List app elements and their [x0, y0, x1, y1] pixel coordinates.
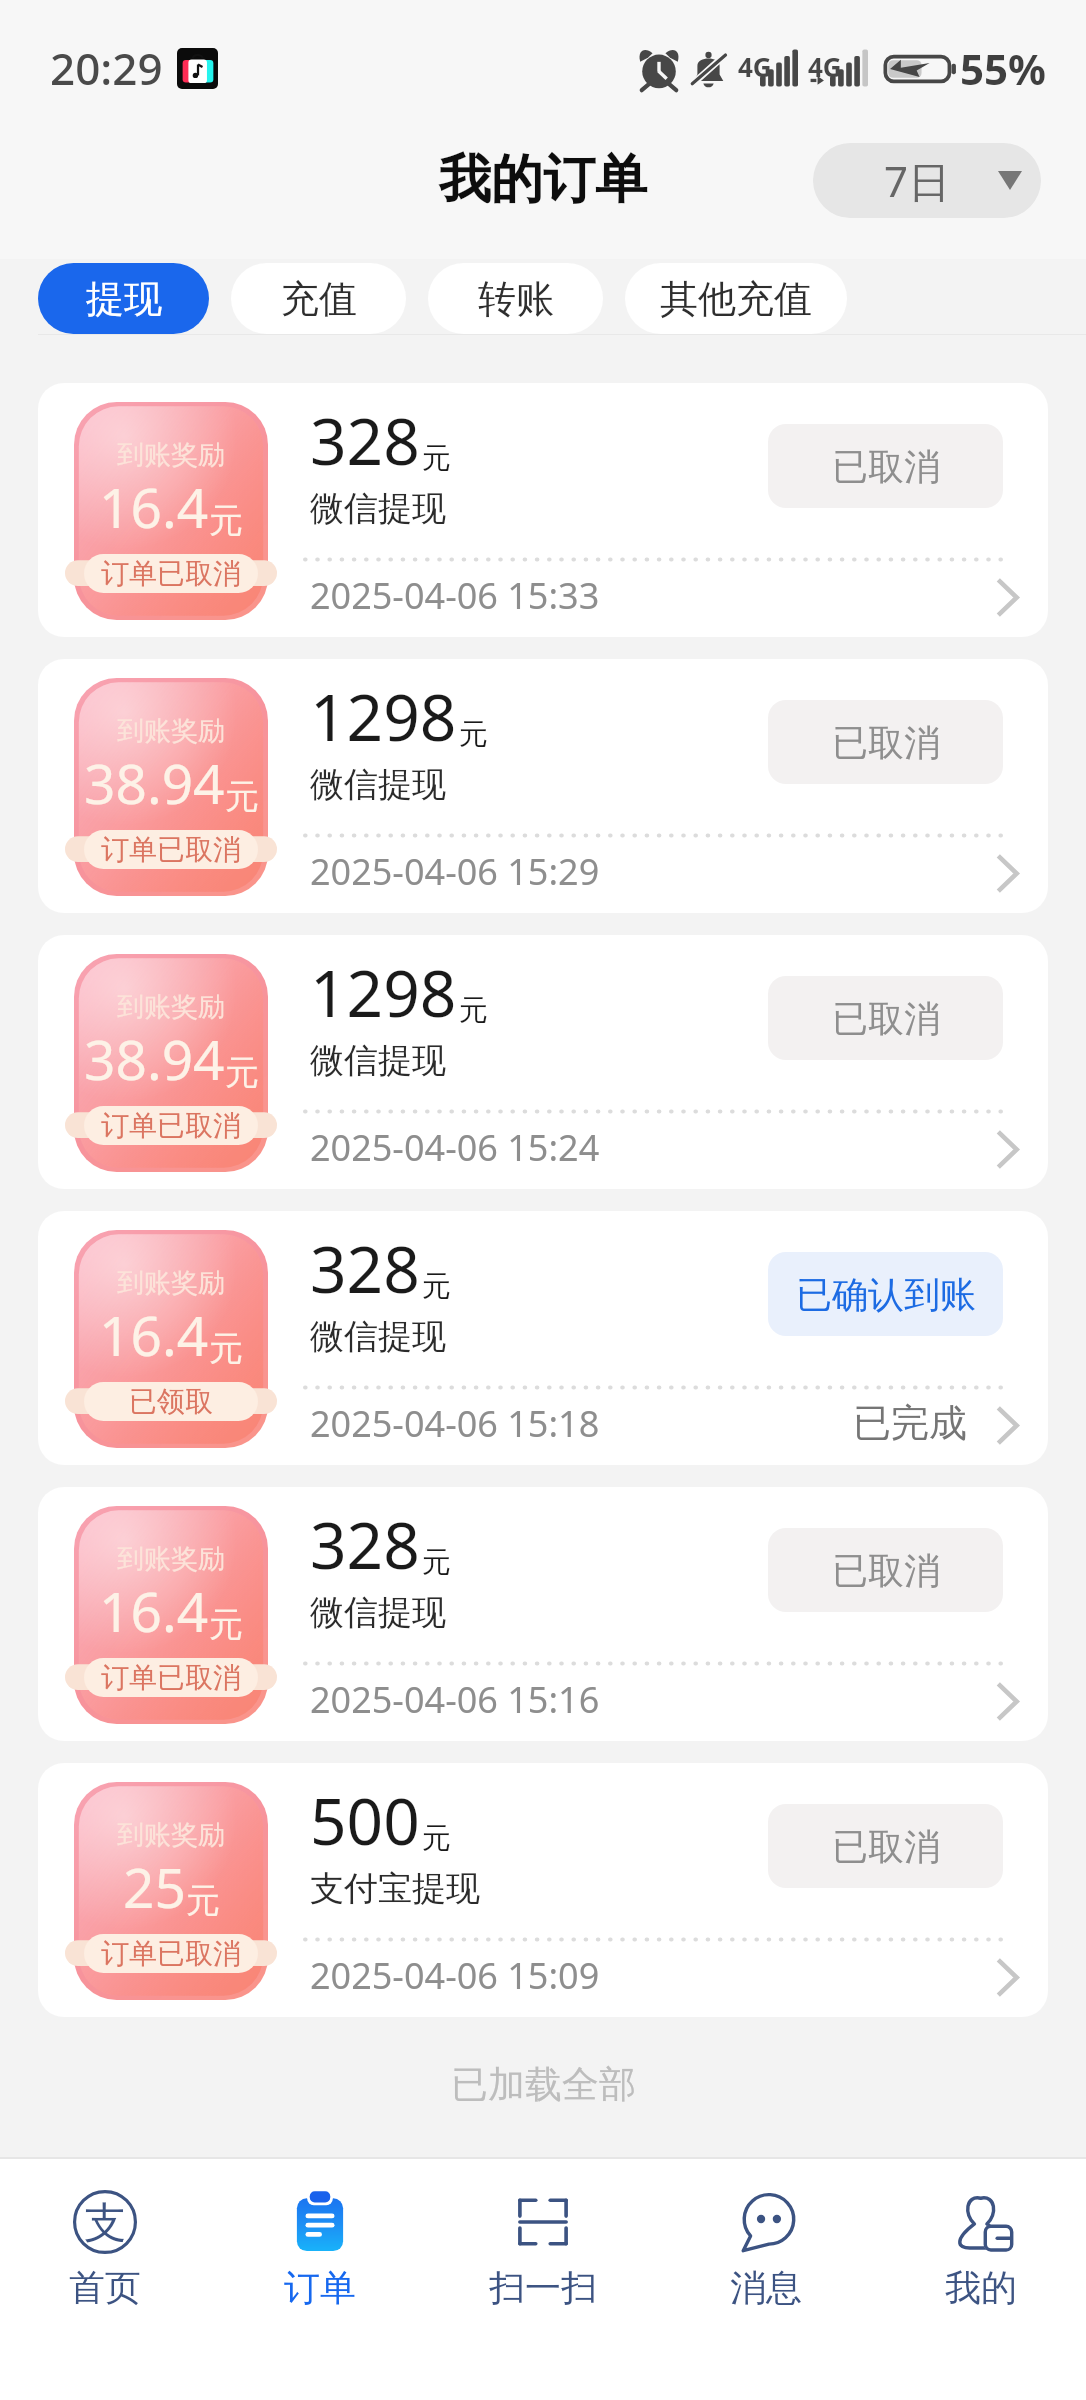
staticText: 微信提现: [310, 1315, 446, 1358]
staticText: 1298: [310, 673, 457, 760]
staticText: 已取消: [832, 996, 940, 1041]
staticText: 328: [310, 397, 420, 484]
button[interactable]: 其他充值: [625, 263, 847, 334]
staticText: 4G: [808, 49, 842, 84]
button[interactable]: 已取消: [768, 424, 1003, 508]
staticText: 微信提现: [310, 763, 446, 806]
staticText: 2025-04-06 15:16: [310, 1675, 600, 1724]
staticText: 消息: [730, 2265, 802, 2310]
staticText: 已取消: [832, 720, 940, 765]
staticText: 元: [422, 440, 451, 477]
other: 我的: [948, 2189, 1014, 2255]
staticText: 16.4: [99, 469, 209, 544]
staticText: 转账: [478, 275, 554, 323]
staticText: 到账奖励: [117, 1818, 225, 1852]
staticText: 元: [225, 775, 259, 818]
button[interactable]: 消息: [656, 2189, 875, 2314]
staticText: 元: [209, 1327, 243, 1370]
staticText: 4G: [738, 49, 772, 84]
other: 扫一扫: [510, 2189, 576, 2255]
staticText: 已完成: [853, 1399, 967, 1447]
button[interactable]: 充值: [231, 263, 406, 334]
staticText: 订单: [284, 2265, 356, 2310]
button[interactable]: 7日: [813, 143, 1041, 218]
staticText: 元: [209, 499, 243, 542]
staticText: 元: [422, 1268, 451, 1305]
staticText: 328: [310, 1225, 420, 1312]
staticText: 已取消: [832, 1824, 940, 1869]
button[interactable]: 订单: [210, 2189, 429, 2314]
staticText: 元: [459, 992, 488, 1029]
staticText: 2025-04-06 15:09: [310, 1951, 600, 2000]
staticText: 微信提现: [310, 1591, 446, 1634]
staticText: 扫一扫: [489, 2265, 597, 2310]
staticText: 其他充值: [660, 275, 812, 323]
staticText: 提现: [86, 275, 162, 323]
staticText: 元: [422, 1820, 451, 1857]
staticText: 元: [209, 1603, 243, 1646]
staticText: 到账奖励: [117, 438, 225, 472]
staticText: 已领取: [129, 1384, 213, 1419]
button[interactable]: 已取消: [768, 700, 1003, 784]
staticText: 16.4: [99, 1573, 209, 1648]
button[interactable]: 到账奖励: [38, 659, 1048, 913]
button[interactable]: 提现: [38, 263, 209, 334]
button[interactable]: 到账奖励: [38, 383, 1048, 637]
staticText: 38.94: [84, 745, 225, 820]
button[interactable]: 已取消: [768, 1528, 1003, 1612]
staticText: 328: [310, 1501, 420, 1588]
staticText: 我的订单: [439, 147, 647, 213]
staticText: 到账奖励: [117, 1542, 225, 1576]
staticText: 元: [186, 1879, 220, 1922]
staticText: 支付宝提现: [310, 1867, 480, 1910]
staticText: 25: [123, 1849, 186, 1924]
staticText: 已取消: [832, 1548, 940, 1593]
staticText: 2025-04-06 15:29: [310, 847, 600, 896]
button[interactable]: 扫一扫: [429, 2189, 656, 2314]
staticText: 元: [422, 1544, 451, 1581]
staticText: 订单已取消: [101, 1936, 241, 1971]
staticText: 微信提现: [310, 487, 446, 530]
staticText: 到账奖励: [117, 714, 225, 748]
button[interactable]: 首页: [0, 2189, 210, 2314]
button[interactable]: 我的: [875, 2189, 1086, 2314]
staticText: 元: [459, 716, 488, 753]
button[interactable]: 已确认到账: [768, 1252, 1003, 1336]
staticText: 16.4: [99, 1297, 209, 1372]
staticText: 订单已取消: [101, 1660, 241, 1695]
button[interactable]: 转账: [428, 263, 603, 334]
staticText: 订单已取消: [101, 1108, 241, 1143]
staticText: 我的: [945, 2265, 1017, 2310]
staticText: 支: [84, 2197, 126, 2250]
staticText: 38.94: [84, 1021, 225, 1096]
staticText: 2025-04-06 15:33: [310, 571, 600, 620]
staticText: 500: [310, 1777, 420, 1864]
button[interactable]: 到账奖励: [38, 935, 1048, 1189]
staticText: 到账奖励: [117, 990, 225, 1024]
staticText: 55%: [960, 40, 1046, 97]
button[interactable]: 到账奖励: [38, 1487, 1048, 1741]
button[interactable]: 到账奖励: [38, 1763, 1048, 2017]
staticText: 已加载全部: [451, 2061, 636, 2108]
staticText: 订单已取消: [101, 556, 241, 591]
staticText: 20:29: [50, 38, 163, 98]
staticText: 首页: [69, 2265, 141, 2310]
staticText: 订单已取消: [101, 832, 241, 867]
staticText: 元: [225, 1051, 259, 1094]
other: 消息: [733, 2189, 799, 2255]
other: 订单: [287, 2189, 353, 2255]
button[interactable]: 已取消: [768, 976, 1003, 1060]
staticText: 充值: [281, 275, 357, 323]
button[interactable]: 到账奖励: [38, 1211, 1048, 1465]
button[interactable]: 已取消: [768, 1804, 1003, 1888]
staticText: 2025-04-06 15:18: [310, 1399, 600, 1448]
staticText: 到账奖励: [117, 1266, 225, 1300]
staticText: 1298: [310, 949, 457, 1036]
staticText: 已取消: [832, 444, 940, 489]
other: 首页: [72, 2189, 138, 2255]
staticText: 7日: [884, 152, 951, 209]
staticText: 已确认到账: [796, 1272, 976, 1317]
staticText: 微信提现: [310, 1039, 446, 1082]
staticText: 2025-04-06 15:24: [310, 1123, 600, 1172]
